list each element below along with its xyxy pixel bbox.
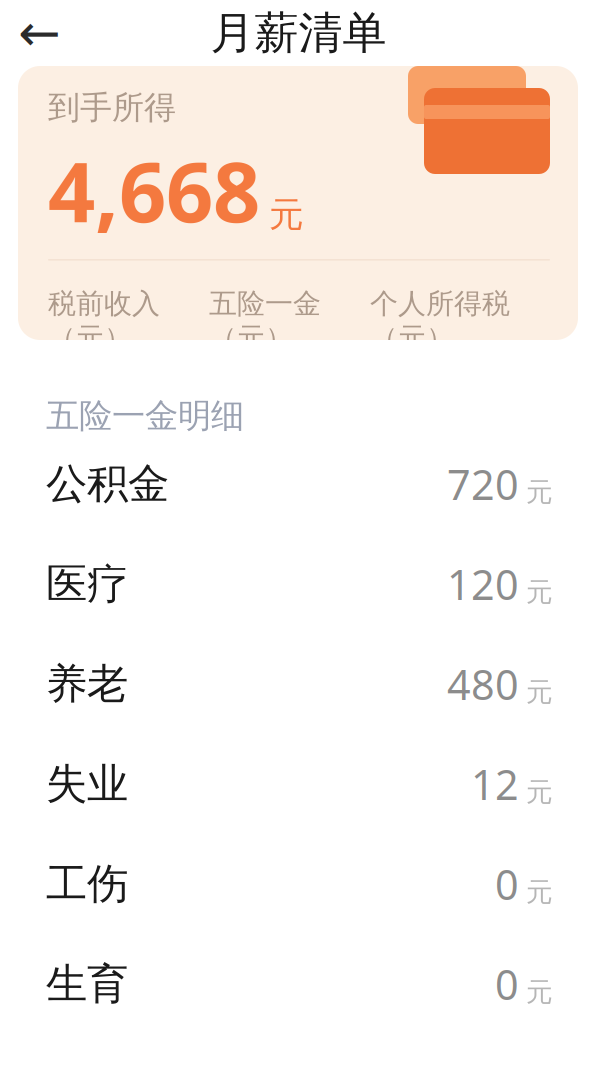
staticText: 到手所得 (48, 88, 176, 127)
staticText: 个人所得税（元） (370, 287, 510, 355)
staticText: 6,000 (48, 360, 146, 412)
staticText: 医疗 (46, 559, 128, 609)
button[interactable]: 失业 (0, 734, 597, 834)
staticText: 失业 (46, 759, 128, 809)
button[interactable]: 医疗 (0, 534, 597, 634)
staticText: 1,332 (209, 360, 307, 412)
staticText: 元 (526, 576, 553, 608)
staticText: 五险一金明细 (46, 395, 244, 436)
staticText: 元 (526, 676, 553, 708)
staticText: 0 (495, 957, 519, 1011)
staticText: 生育 (46, 959, 128, 1009)
button[interactable]: Back (0, 0, 78, 66)
button[interactable]: 工伤 (0, 834, 597, 934)
staticText: 480 (447, 657, 519, 711)
staticText: 五险一金（元） (209, 287, 321, 355)
staticText: 元 (269, 193, 304, 236)
staticText: 720 (447, 457, 519, 511)
staticText: 养老 (46, 659, 128, 709)
staticText: 元 (526, 776, 553, 808)
staticText: 月薪清单 (210, 6, 386, 60)
staticText: 120 (447, 557, 519, 611)
staticText: 元 (526, 476, 553, 508)
staticText: 12 (471, 757, 519, 811)
staticText: 4,668 (48, 135, 260, 245)
staticText: 税前收入（元） (48, 287, 160, 355)
staticText: 公积金 (46, 459, 169, 509)
staticText: 元 (526, 976, 553, 1008)
staticText: 工伤 (46, 859, 128, 909)
staticText: 元 (526, 876, 553, 908)
staticText: ← (18, 4, 60, 62)
button[interactable]: 养老 (0, 634, 597, 734)
staticText: 0 (495, 857, 519, 911)
button[interactable]: 公积金 (0, 434, 597, 534)
button[interactable]: 生育 (0, 934, 597, 1034)
